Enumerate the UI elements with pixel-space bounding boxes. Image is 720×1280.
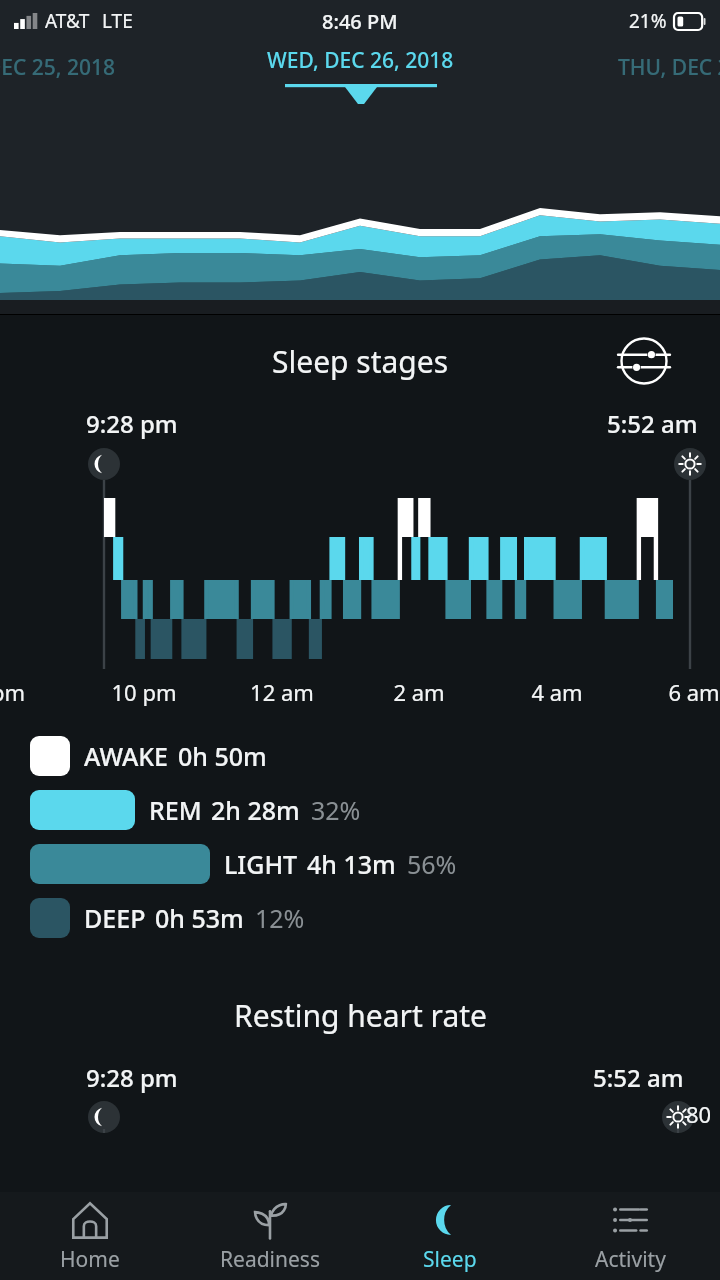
button[interactable]: LIGHT bbox=[0, 837, 720, 891]
staticText: 9:28 pm bbox=[86, 1061, 178, 1094]
staticText: Home bbox=[60, 1245, 120, 1274]
staticText: Sleep stages bbox=[272, 341, 449, 382]
button[interactable]: Activity bbox=[540, 1192, 720, 1280]
staticText: 0h 53m bbox=[155, 901, 244, 935]
button[interactable]: DEEP bbox=[0, 891, 720, 945]
staticText: 6 am bbox=[660, 677, 720, 707]
staticText: 0h 50m bbox=[178, 739, 267, 773]
staticText: LIGHT bbox=[224, 847, 298, 881]
staticText: 9:28 pm bbox=[86, 407, 178, 440]
staticText: 2 am bbox=[385, 677, 453, 707]
button[interactable]: WED, DEC 26, 2018 bbox=[267, 46, 454, 97]
staticText: AT&T bbox=[45, 8, 90, 34]
button[interactable]: Readiness bbox=[180, 1192, 360, 1280]
staticText: 4h 13m bbox=[307, 847, 396, 881]
button[interactable]: Sleep bbox=[360, 1192, 540, 1280]
staticText: WED, DEC 26, 2018 bbox=[267, 46, 454, 75]
button[interactable]: REM bbox=[0, 783, 720, 837]
button[interactable]: AWAKE bbox=[0, 729, 720, 783]
staticText: 10 pm bbox=[110, 677, 178, 707]
staticText: 5:52 am bbox=[593, 1061, 684, 1094]
staticText: REM bbox=[149, 793, 202, 827]
staticText: Activity bbox=[595, 1245, 666, 1274]
staticText: Resting heart rate bbox=[234, 995, 487, 1036]
staticText: 4 am bbox=[523, 677, 591, 707]
staticText: 2h 28m bbox=[211, 793, 300, 827]
button[interactable]: Sleep stage settings bbox=[620, 337, 668, 385]
staticText: 8:46 PM bbox=[322, 8, 398, 35]
staticText: 12% bbox=[255, 901, 305, 935]
staticText: DEEP bbox=[84, 901, 146, 935]
button[interactable]: THU, DEC 27 bbox=[618, 53, 720, 82]
staticText: Readiness bbox=[220, 1245, 320, 1274]
button[interactable]: DEC 25, 2018 bbox=[0, 53, 116, 82]
staticText: 80 bbox=[686, 1099, 712, 1129]
staticText: 56% bbox=[407, 847, 457, 881]
staticText: 32% bbox=[311, 793, 361, 827]
staticText: AWAKE bbox=[84, 739, 169, 773]
staticText: 21% bbox=[629, 8, 667, 34]
staticText: 5:52 am bbox=[607, 407, 698, 440]
staticText: 12 am bbox=[248, 677, 316, 707]
staticText: Sleep bbox=[423, 1245, 477, 1274]
staticText: pm bbox=[0, 677, 42, 707]
staticText: LTE bbox=[102, 8, 133, 34]
button[interactable]: Home bbox=[0, 1192, 180, 1280]
